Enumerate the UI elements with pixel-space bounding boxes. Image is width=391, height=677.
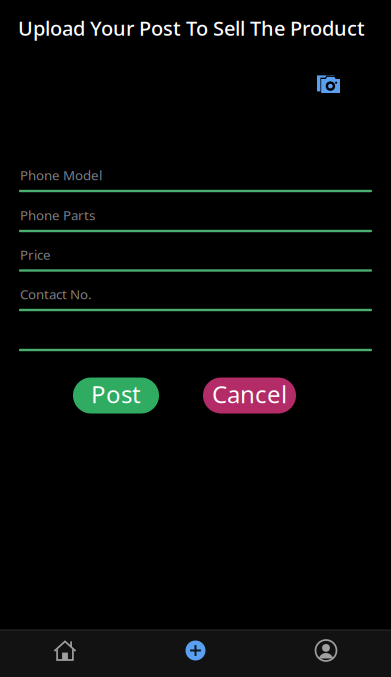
button[interactable]: Post (73, 377, 159, 413)
button[interactable]: Add photo (310, 68, 347, 100)
staticText: Upload Your Post To Sell The Product (18, 15, 365, 41)
button[interactable]: Profile (261, 630, 391, 677)
staticText: Contact No. (20, 285, 92, 303)
staticText: Phone Model (20, 166, 102, 184)
button[interactable]: Add post (130, 630, 260, 677)
staticText: Price (20, 246, 51, 263)
staticText: Post (91, 378, 141, 410)
button[interactable]: Cancel (203, 377, 296, 413)
staticText: Phone Parts (20, 206, 95, 224)
staticText: Cancel (212, 378, 287, 410)
button[interactable]: Home (0, 630, 130, 677)
